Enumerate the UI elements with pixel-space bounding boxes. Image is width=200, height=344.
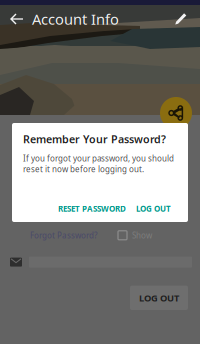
button[interactable]: Show <box>118 228 152 243</box>
staticText: Account Info <box>32 9 119 29</box>
staticText: Show <box>132 230 152 241</box>
staticText: If you forgot your password, you should … <box>23 153 174 174</box>
button[interactable]: LOG OUT <box>130 286 188 310</box>
staticText: Remember Your Password? <box>23 132 166 146</box>
button[interactable]: Back <box>2 5 32 33</box>
staticText: Forgot Password? <box>30 230 98 241</box>
button[interactable]: Share <box>160 97 192 129</box>
button[interactable]: RESET PASSWORD <box>53 198 131 219</box>
staticText: LOG OUT <box>136 203 171 214</box>
button[interactable]: LOG OUT <box>131 198 176 219</box>
button[interactable]: Forgot Password? <box>30 228 98 243</box>
button[interactable]: Edit <box>168 5 194 33</box>
staticText: RESET PASSWORD <box>58 203 126 214</box>
staticText: LOG OUT <box>139 292 179 304</box>
